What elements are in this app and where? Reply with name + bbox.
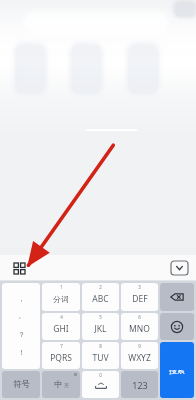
staticText: 3 [138, 284, 141, 290]
button[interactable]: 符号 [2, 371, 40, 398]
button[interactable]: 7 [42, 342, 80, 369]
staticText: 中 [54, 379, 63, 390]
staticText: JKL [94, 323, 107, 335]
button[interactable]: 2 [82, 283, 119, 311]
button[interactable]: Search [160, 342, 194, 370]
button[interactable]: Delete [160, 283, 194, 311]
staticText: ABC [92, 293, 109, 305]
button[interactable]: ， [2, 283, 40, 369]
staticText: 0 [99, 372, 102, 378]
staticText: 2 [99, 284, 102, 290]
staticText: 5 [99, 314, 102, 320]
button[interactable]: Space [82, 371, 119, 398]
staticText: MNO [129, 323, 150, 335]
staticText: 6 [138, 314, 141, 320]
staticText: DEF [132, 293, 148, 305]
staticText: ， [18, 295, 25, 303]
button[interactable]: 搜索 [160, 370, 194, 398]
button[interactable]: 6 [121, 313, 158, 340]
staticText: 1 [60, 284, 63, 290]
staticText: 9 [138, 343, 141, 349]
staticText: TUV [92, 352, 109, 364]
button[interactable]: Keyboard menu [9, 258, 29, 278]
staticText: 英 [64, 382, 69, 388]
button[interactable]: 8 [82, 342, 119, 369]
staticText: 搜索 [169, 370, 185, 375]
staticText: 123 [132, 379, 148, 391]
button[interactable]: Emoji [160, 313, 194, 340]
button[interactable]: 9 [121, 342, 158, 369]
staticText: GHI [53, 323, 69, 335]
button[interactable]: 3 [121, 283, 158, 311]
staticText: 。 [18, 312, 25, 320]
staticText: 7 [60, 343, 63, 349]
staticText: 分词 [53, 294, 69, 304]
button[interactable]: 123 [121, 371, 158, 398]
button[interactable]: 1 [42, 283, 80, 311]
button[interactable]: 4 [42, 313, 80, 340]
staticText: ！ [18, 348, 25, 357]
staticText: 8 [99, 343, 102, 349]
button[interactable]: Hide keyboard [171, 261, 188, 275]
staticText: 4 [60, 314, 63, 320]
button[interactable]: 中 [42, 371, 80, 398]
staticText: PQRS [50, 352, 72, 364]
staticText: 符号 [13, 379, 30, 390]
staticText: WXYZ [128, 352, 151, 364]
staticText: ？ [18, 330, 25, 339]
button[interactable]: 5 [82, 313, 119, 340]
